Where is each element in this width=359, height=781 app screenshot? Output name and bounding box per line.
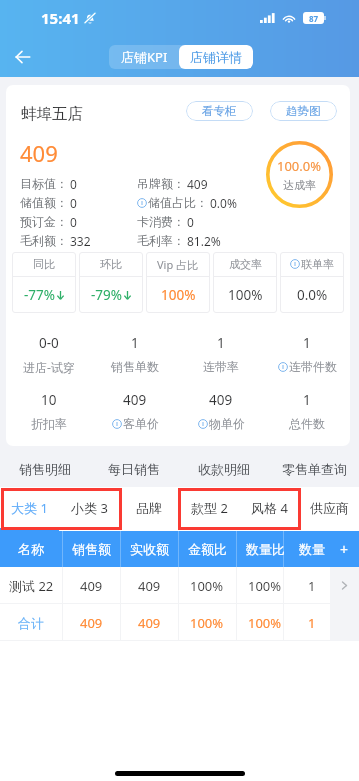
button[interactable]: 100% xyxy=(178,567,236,604)
staticText: 1 xyxy=(217,334,225,352)
button[interactable]: 品牌 xyxy=(119,487,179,531)
staticText: 销售明细 xyxy=(19,461,71,477)
button[interactable]: 实收额 xyxy=(120,531,178,567)
button[interactable]: 测试 22 xyxy=(0,567,62,604)
staticText: 每日销售 xyxy=(108,461,160,477)
staticText: 连带件数 xyxy=(289,359,337,374)
staticText: 风格 4 xyxy=(251,499,288,517)
button[interactable]: 款型 2 xyxy=(179,487,239,531)
button[interactable]: 销售额 xyxy=(62,531,120,567)
staticText: 店铺详情 xyxy=(190,49,242,65)
button[interactable]: 风格 4 xyxy=(239,487,299,531)
staticText: Vip 占比 xyxy=(157,257,199,272)
staticText: 销售额 xyxy=(72,541,111,557)
staticText: 销售单数 xyxy=(111,359,159,374)
staticText: 409 xyxy=(209,391,233,409)
button[interactable]: 数量比 xyxy=(236,531,294,567)
button[interactable]: 销售明细 xyxy=(0,453,89,485)
button[interactable]: 供应商 xyxy=(299,487,359,531)
staticText: 409 xyxy=(20,138,58,168)
staticText: 实收额 xyxy=(130,541,169,557)
button[interactable]: 合计 xyxy=(0,604,62,641)
staticText: 折扣率 xyxy=(31,416,67,431)
staticText: 合计 xyxy=(18,615,44,631)
staticText: -79% xyxy=(91,286,123,304)
staticText: 409 xyxy=(187,176,208,192)
staticText: 409 xyxy=(138,577,161,595)
staticText: 店铺KPI xyxy=(121,48,168,66)
staticText: -77% xyxy=(24,286,56,304)
staticText: 连带率 xyxy=(203,359,239,374)
button[interactable]: 大类 1 xyxy=(0,487,59,531)
button[interactable]: 409 xyxy=(92,391,178,431)
staticText: 332 xyxy=(70,233,91,249)
staticText: 收款明细 xyxy=(198,461,250,477)
button[interactable]: 数量 xyxy=(283,531,330,567)
staticText: 环比 xyxy=(100,257,122,271)
staticText: 款型 2 xyxy=(191,499,228,517)
button[interactable]: 409 xyxy=(120,604,178,641)
staticText: 看专柜 xyxy=(202,104,237,118)
staticText: 储值占比： xyxy=(148,195,208,210)
staticText: 进店-试穿 xyxy=(23,359,75,375)
staticText: 客单价 xyxy=(123,416,159,431)
button[interactable]: 小类 3 xyxy=(59,487,119,531)
staticText: 100% xyxy=(161,286,196,304)
staticText: 100% xyxy=(228,286,263,304)
staticText: 成交率 xyxy=(229,257,262,271)
staticText: 金额比 xyxy=(188,541,227,557)
button[interactable]: 环比 xyxy=(79,252,143,313)
staticText: 蚌埠五店 xyxy=(21,104,83,124)
button[interactable]: 零售单查询 xyxy=(269,453,359,485)
button[interactable]: 1 xyxy=(283,567,330,604)
button[interactable]: Add column xyxy=(330,531,359,567)
button[interactable]: 联单率 xyxy=(280,252,344,313)
button[interactable]: 金额比 xyxy=(178,531,236,567)
staticText: 87 xyxy=(309,13,319,24)
button[interactable]: 1 xyxy=(178,334,264,374)
staticText: 0.0% xyxy=(210,195,237,211)
staticText: 数量 xyxy=(299,541,325,557)
staticText: 物单价 xyxy=(209,416,245,431)
button[interactable]: 趋势图 xyxy=(270,101,337,121)
button[interactable]: Back xyxy=(0,36,46,77)
staticText: 1 xyxy=(308,614,316,632)
staticText: 毛利额： xyxy=(20,233,68,248)
staticText: 同比 xyxy=(33,257,55,271)
button[interactable]: 名称 xyxy=(0,531,62,567)
staticText: 总件数 xyxy=(289,416,325,431)
button[interactable]: 0-0 xyxy=(6,334,92,375)
button[interactable]: 店铺KPI xyxy=(109,45,179,69)
staticText: 预订金： xyxy=(20,214,68,229)
button[interactable]: Vip 占比 xyxy=(146,252,210,313)
staticText: 测试 22 xyxy=(9,577,54,595)
button[interactable]: 1 xyxy=(264,334,350,374)
staticText: 名称 xyxy=(18,541,44,557)
staticText: 联单率 xyxy=(301,257,334,271)
button[interactable]: 409 xyxy=(62,604,120,641)
staticText: 1 xyxy=(131,334,139,352)
button[interactable]: 100% xyxy=(236,567,294,604)
staticText: 1 xyxy=(303,334,311,352)
button[interactable]: 收款明细 xyxy=(179,453,269,485)
button[interactable]: 成交率 xyxy=(213,252,277,313)
button[interactable]: 100% xyxy=(178,604,236,641)
button[interactable]: 10 xyxy=(6,391,92,431)
button[interactable]: 店铺详情 xyxy=(179,45,253,69)
button[interactable]: 看专柜 xyxy=(186,101,253,121)
button[interactable]: 1 xyxy=(264,391,350,431)
staticText: 100% xyxy=(248,577,282,595)
button[interactable]: 同比 xyxy=(12,252,76,313)
button[interactable]: 1 xyxy=(92,334,178,374)
button[interactable]: 409 xyxy=(120,567,178,604)
staticText: + xyxy=(340,540,349,559)
staticText: 品牌 xyxy=(136,500,162,516)
button[interactable]: 每日销售 xyxy=(89,453,179,485)
button[interactable]: 1 xyxy=(283,604,330,641)
staticText: 15:41 xyxy=(41,8,80,28)
button[interactable]: 409 xyxy=(62,567,120,604)
staticText: 100% xyxy=(248,614,282,632)
button[interactable]: 100% xyxy=(236,604,294,641)
staticText: 储值额： xyxy=(20,195,68,210)
button[interactable]: 409 xyxy=(178,391,264,431)
